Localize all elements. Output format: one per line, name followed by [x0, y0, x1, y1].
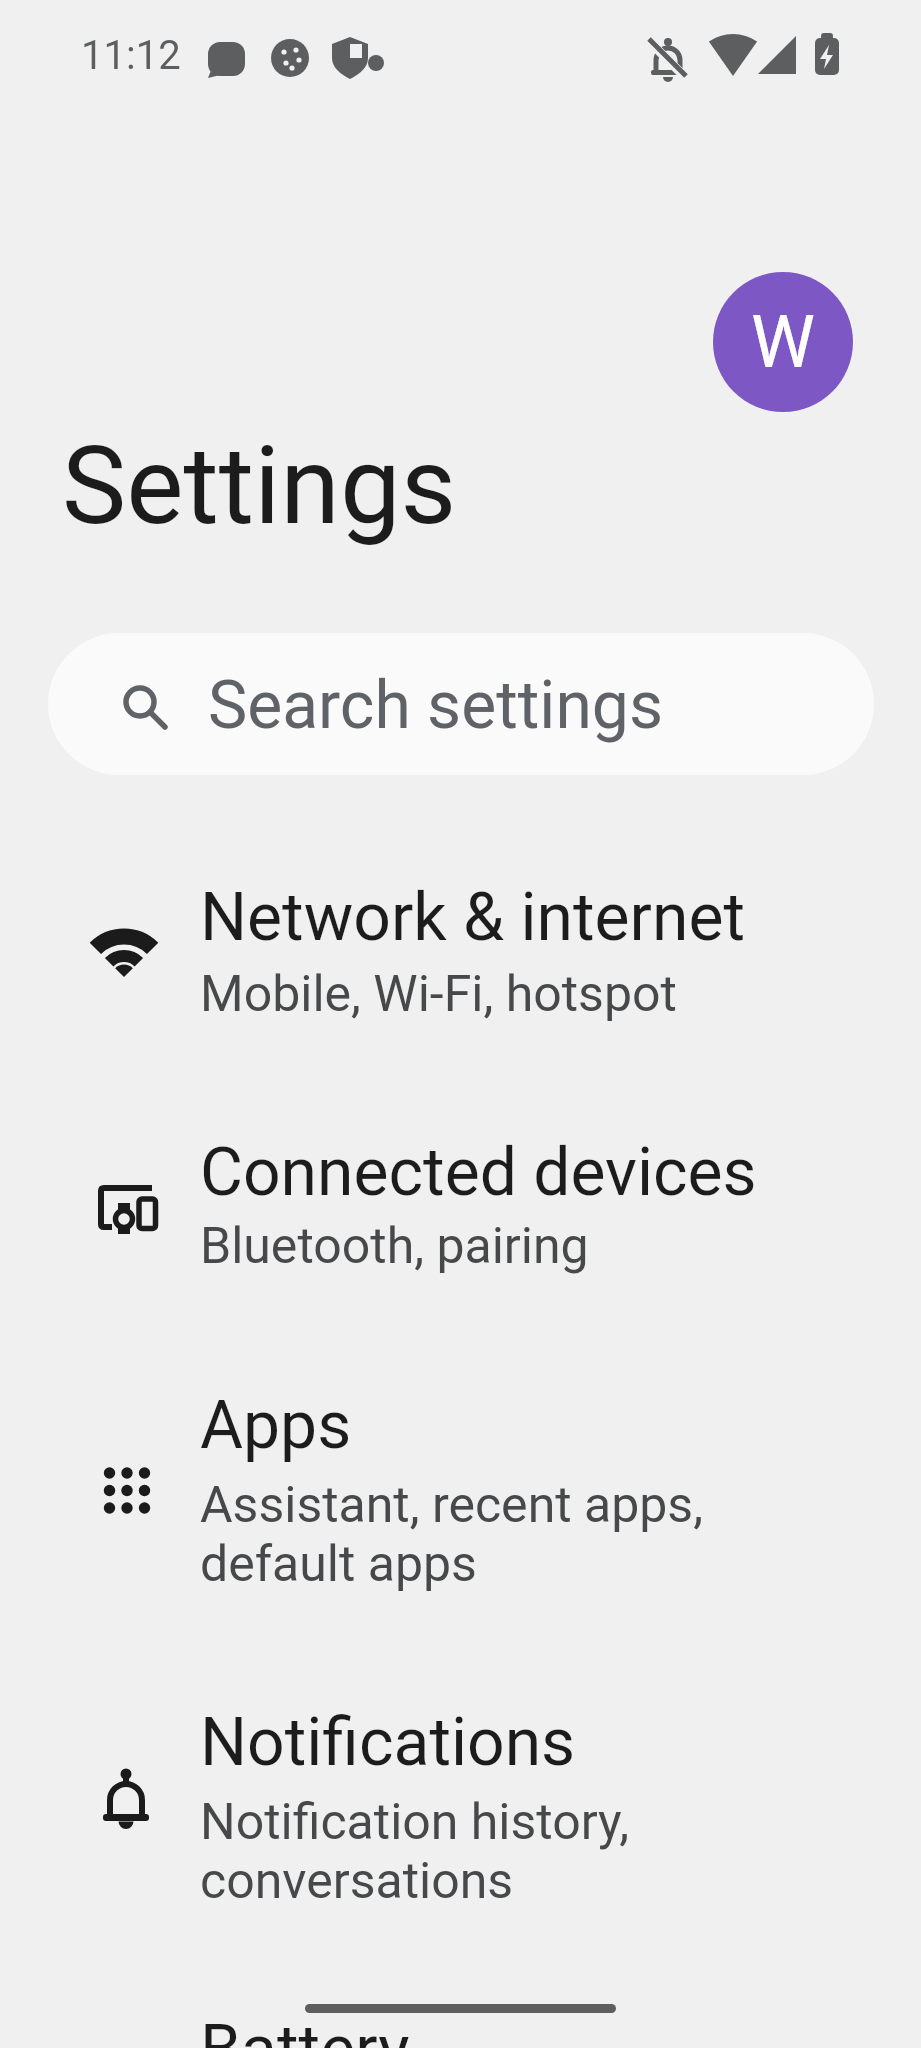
- staticText: Connected devices: [200, 1134, 757, 1211]
- staticText: W: [751, 300, 815, 384]
- staticText: 11:12: [81, 32, 181, 79]
- staticText: Settings: [62, 423, 457, 550]
- staticText: Search settings: [208, 667, 663, 744]
- staticText: Assistant, recent apps, default apps: [200, 1476, 704, 1594]
- button[interactable]: [0, 1360, 921, 1615]
- staticText: Network & internet: [200, 879, 746, 956]
- button[interactable]: [0, 1675, 921, 1930]
- button[interactable]: [48, 633, 874, 775]
- staticText: Notifications: [200, 1704, 576, 1781]
- staticText: Bluetooth, pairing: [200, 1217, 589, 1276]
- button[interactable]: W: [713, 272, 853, 412]
- staticText: Battery: [200, 2011, 410, 2048]
- staticText: Notification history, conversations: [200, 1793, 629, 1911]
- staticText: Mobile, Wi-Fi, hotspot: [200, 965, 677, 1024]
- button[interactable]: [0, 1990, 921, 2048]
- button[interactable]: [0, 1105, 921, 1295]
- staticText: Apps: [200, 1387, 352, 1464]
- button[interactable]: [0, 850, 921, 1045]
